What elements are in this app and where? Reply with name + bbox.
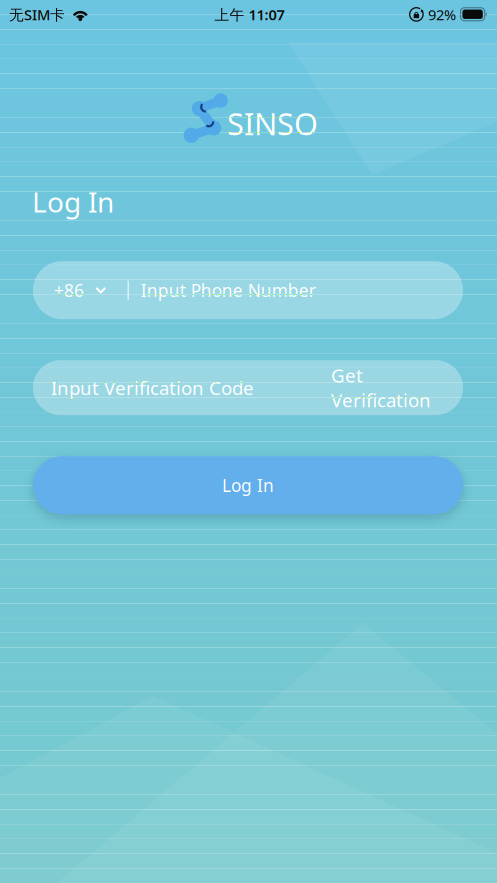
- staticText: Log In: [32, 183, 114, 220]
- staticText: Input Phone Number: [141, 279, 316, 302]
- button[interactable]: Get Verification: [331, 360, 463, 416]
- staticText: Get Verification: [331, 363, 431, 412]
- staticText: 上午 11:07: [214, 5, 284, 24]
- staticText: SINSO: [227, 103, 318, 144]
- staticText: 92%: [428, 5, 456, 24]
- staticText: Log In: [222, 474, 274, 497]
- staticText: Input Verification Code: [51, 375, 254, 400]
- button[interactable]: Log In: [33, 456, 463, 514]
- button[interactable]: Country code +86: [33, 261, 107, 319]
- staticText: 无SIM卡: [9, 5, 65, 24]
- staticText: +86: [54, 279, 84, 302]
